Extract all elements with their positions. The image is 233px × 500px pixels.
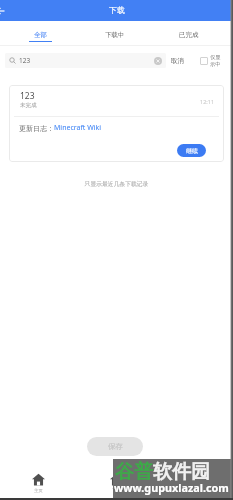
button[interactable]: 下载 [77,470,155,496]
staticText: 仅显 示中 [210,54,221,67]
button[interactable]: 123 [5,53,166,68]
staticText: 已完成 [179,31,199,39]
staticText: 更新日志： [19,124,54,133]
staticText: 继续 [186,147,198,155]
button[interactable]: Back [0,0,10,21]
button[interactable]: 仅显 示中 [200,54,221,67]
button[interactable]: 取消 [170,55,185,67]
staticText: 未完成 [20,102,37,109]
button[interactable]: 保存 [87,437,143,456]
staticText: 下载中 [105,31,125,39]
staticText: 取消 [171,57,184,65]
button[interactable]: 下载中 [78,21,152,45]
staticText: 下载 [109,5,125,15]
staticText: 谷普 [115,460,153,484]
staticText: 123 [20,90,35,102]
staticText: 12:11 [200,98,215,105]
button[interactable]: 继续 [177,144,206,157]
staticText: 我的 [190,488,199,494]
button[interactable]: Clear search [153,56,163,66]
staticText: 保存 [108,442,123,451]
button[interactable]: 全部 [3,21,78,45]
staticText: 下载 [112,488,121,494]
staticText: 123 [19,56,31,65]
staticText: 全部 [34,31,47,39]
staticText: 只显示最近几条下载记录 [0,180,233,187]
staticText: 软件园 [153,460,210,484]
button[interactable]: 已完成 [152,21,226,45]
staticText: www.gupuxlazal.com [114,480,229,495]
staticText: 主页 [34,488,43,494]
button[interactable]: 我的 [155,470,233,496]
button[interactable]: Minecraft Wiki [54,123,102,133]
button[interactable]: 主页 [0,470,77,496]
